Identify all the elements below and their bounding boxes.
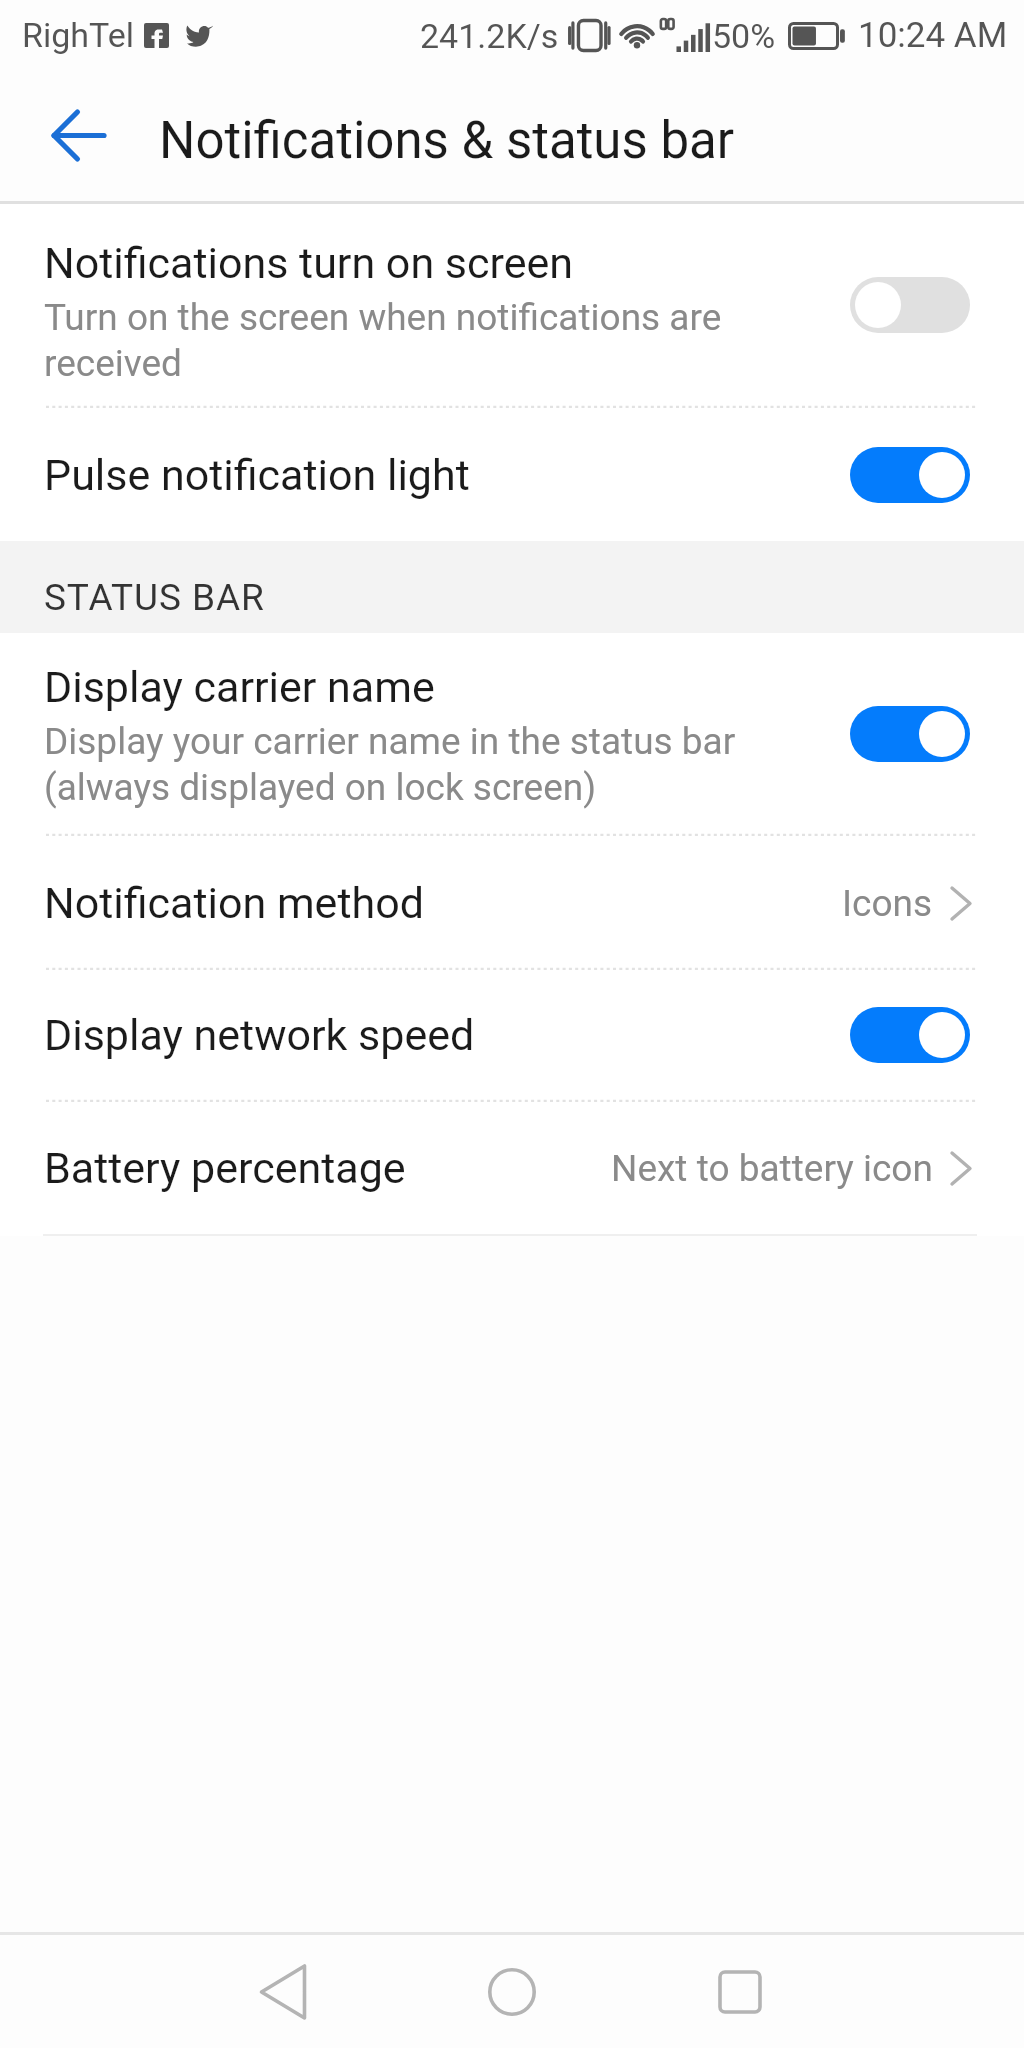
staticText: Next to battery icon [611, 1147, 933, 1190]
button[interactable]: Recent apps [676, 1935, 804, 2048]
button[interactable]: Back [220, 1935, 348, 2048]
button[interactable]: Notification method [0, 836, 1024, 968]
staticText: Notifications turn on screen [44, 238, 574, 288]
button[interactable]: Off [850, 277, 970, 333]
staticText: Turn on the screen when notifications ar… [44, 296, 796, 385]
staticText: 241.2K/s [420, 16, 559, 56]
button[interactable]: On [850, 447, 970, 503]
staticText: Display your carrier name in the status … [44, 720, 796, 809]
staticText: Display network speed [44, 1010, 475, 1060]
button[interactable]: On [850, 1007, 970, 1063]
button[interactable]: Home [448, 1935, 576, 2048]
button[interactable]: Notifications turn on screen [0, 204, 1024, 406]
button[interactable]: Battery percentage [0, 1102, 1024, 1234]
staticText: 10:24 AM [858, 15, 1008, 56]
button[interactable]: Navigate up [0, 70, 157, 201]
staticText: Pulse notification light [44, 450, 470, 500]
staticText: Icons [842, 882, 933, 925]
button[interactable]: On [850, 706, 970, 762]
staticText: Battery percentage [44, 1143, 406, 1193]
staticText: Notifications & status bar [159, 111, 735, 171]
staticText: STATUS BAR [44, 576, 265, 619]
staticText: RighTel [22, 15, 134, 55]
staticText: Notification method [44, 878, 424, 928]
staticText: Display carrier name [44, 662, 435, 712]
button[interactable]: Display carrier name [0, 633, 1024, 834]
staticText: 50% [712, 16, 776, 56]
button[interactable]: Display network speed [0, 970, 1024, 1100]
button[interactable]: Pulse notification light [0, 408, 1024, 541]
